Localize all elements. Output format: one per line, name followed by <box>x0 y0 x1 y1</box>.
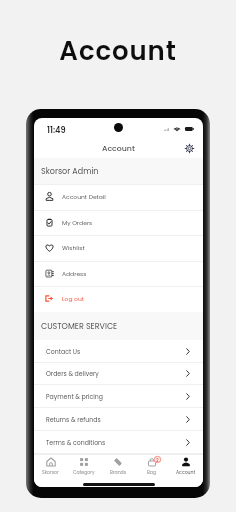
staticText: Orders & delivery <box>46 369 99 378</box>
button[interactable]: Wishlist <box>34 235 203 261</box>
staticText: Skorsor <box>42 469 59 475</box>
button[interactable]: Account Detail <box>34 184 203 210</box>
staticText: Category <box>73 469 95 475</box>
staticText: Wishlist <box>62 244 85 252</box>
staticText: Contact Us <box>46 347 81 356</box>
staticText: Returns & refunds <box>46 415 101 424</box>
staticText: CUSTOMER SERVICE <box>41 321 118 332</box>
button[interactable]: Skorsor <box>34 454 67 478</box>
button[interactable]: Payment & pricing <box>34 385 203 408</box>
staticText: 11:49 <box>47 124 66 135</box>
staticText: 2 <box>156 457 159 463</box>
staticText: Brands <box>110 469 127 475</box>
button[interactable]: Account <box>169 454 203 478</box>
staticText: Account Detail <box>62 193 106 201</box>
staticText: Account <box>0 33 236 69</box>
staticText: Account <box>102 143 135 154</box>
button[interactable]: Terms & conditions <box>34 431 203 454</box>
button[interactable]: My Orders <box>34 210 203 236</box>
staticText: Payment & pricing <box>46 392 103 401</box>
button[interactable]: Category <box>67 454 101 478</box>
staticText: My Orders <box>62 219 93 227</box>
button[interactable]: Contact Us <box>34 340 203 363</box>
staticText: Skorsor Admin <box>41 166 99 177</box>
button[interactable]: 2 <box>135 454 169 478</box>
button[interactable]: Log out <box>34 286 203 312</box>
button[interactable]: Brands <box>101 454 135 478</box>
button[interactable]: Address <box>34 261 203 287</box>
staticText: Bag <box>147 469 157 475</box>
staticText: Account <box>176 469 196 475</box>
button[interactable]: Settings <box>183 142 196 155</box>
staticText: Address <box>62 270 87 278</box>
staticText: Log out <box>62 295 84 303</box>
button[interactable]: Orders & delivery <box>34 362 203 385</box>
staticText: Terms & conditions <box>46 438 106 447</box>
button[interactable]: Returns & refunds <box>34 408 203 431</box>
